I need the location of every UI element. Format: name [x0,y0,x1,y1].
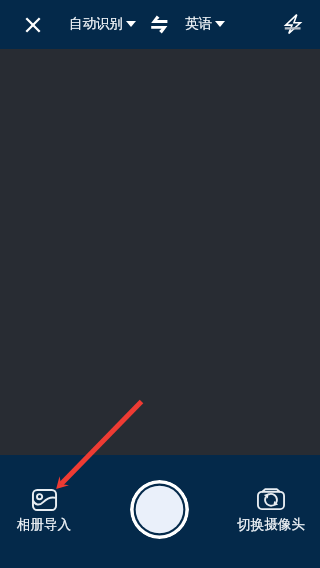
button[interactable]: Swap languages [147,12,168,34]
staticText: 切换摄像头 [237,516,305,533]
button[interactable]: Flash off [283,13,304,36]
button[interactable]: 相册导入 [14,489,74,533]
button[interactable]: 英语 [181,11,225,36]
button[interactable]: 自动识别 [65,11,136,36]
staticText: 相册导入 [17,516,71,533]
staticText: 英语 [185,15,212,32]
button[interactable]: Close [20,12,46,38]
button[interactable]: 切换摄像头 [233,488,309,533]
staticText: 自动识别 [69,15,123,32]
button[interactable]: Take photo [130,480,189,539]
